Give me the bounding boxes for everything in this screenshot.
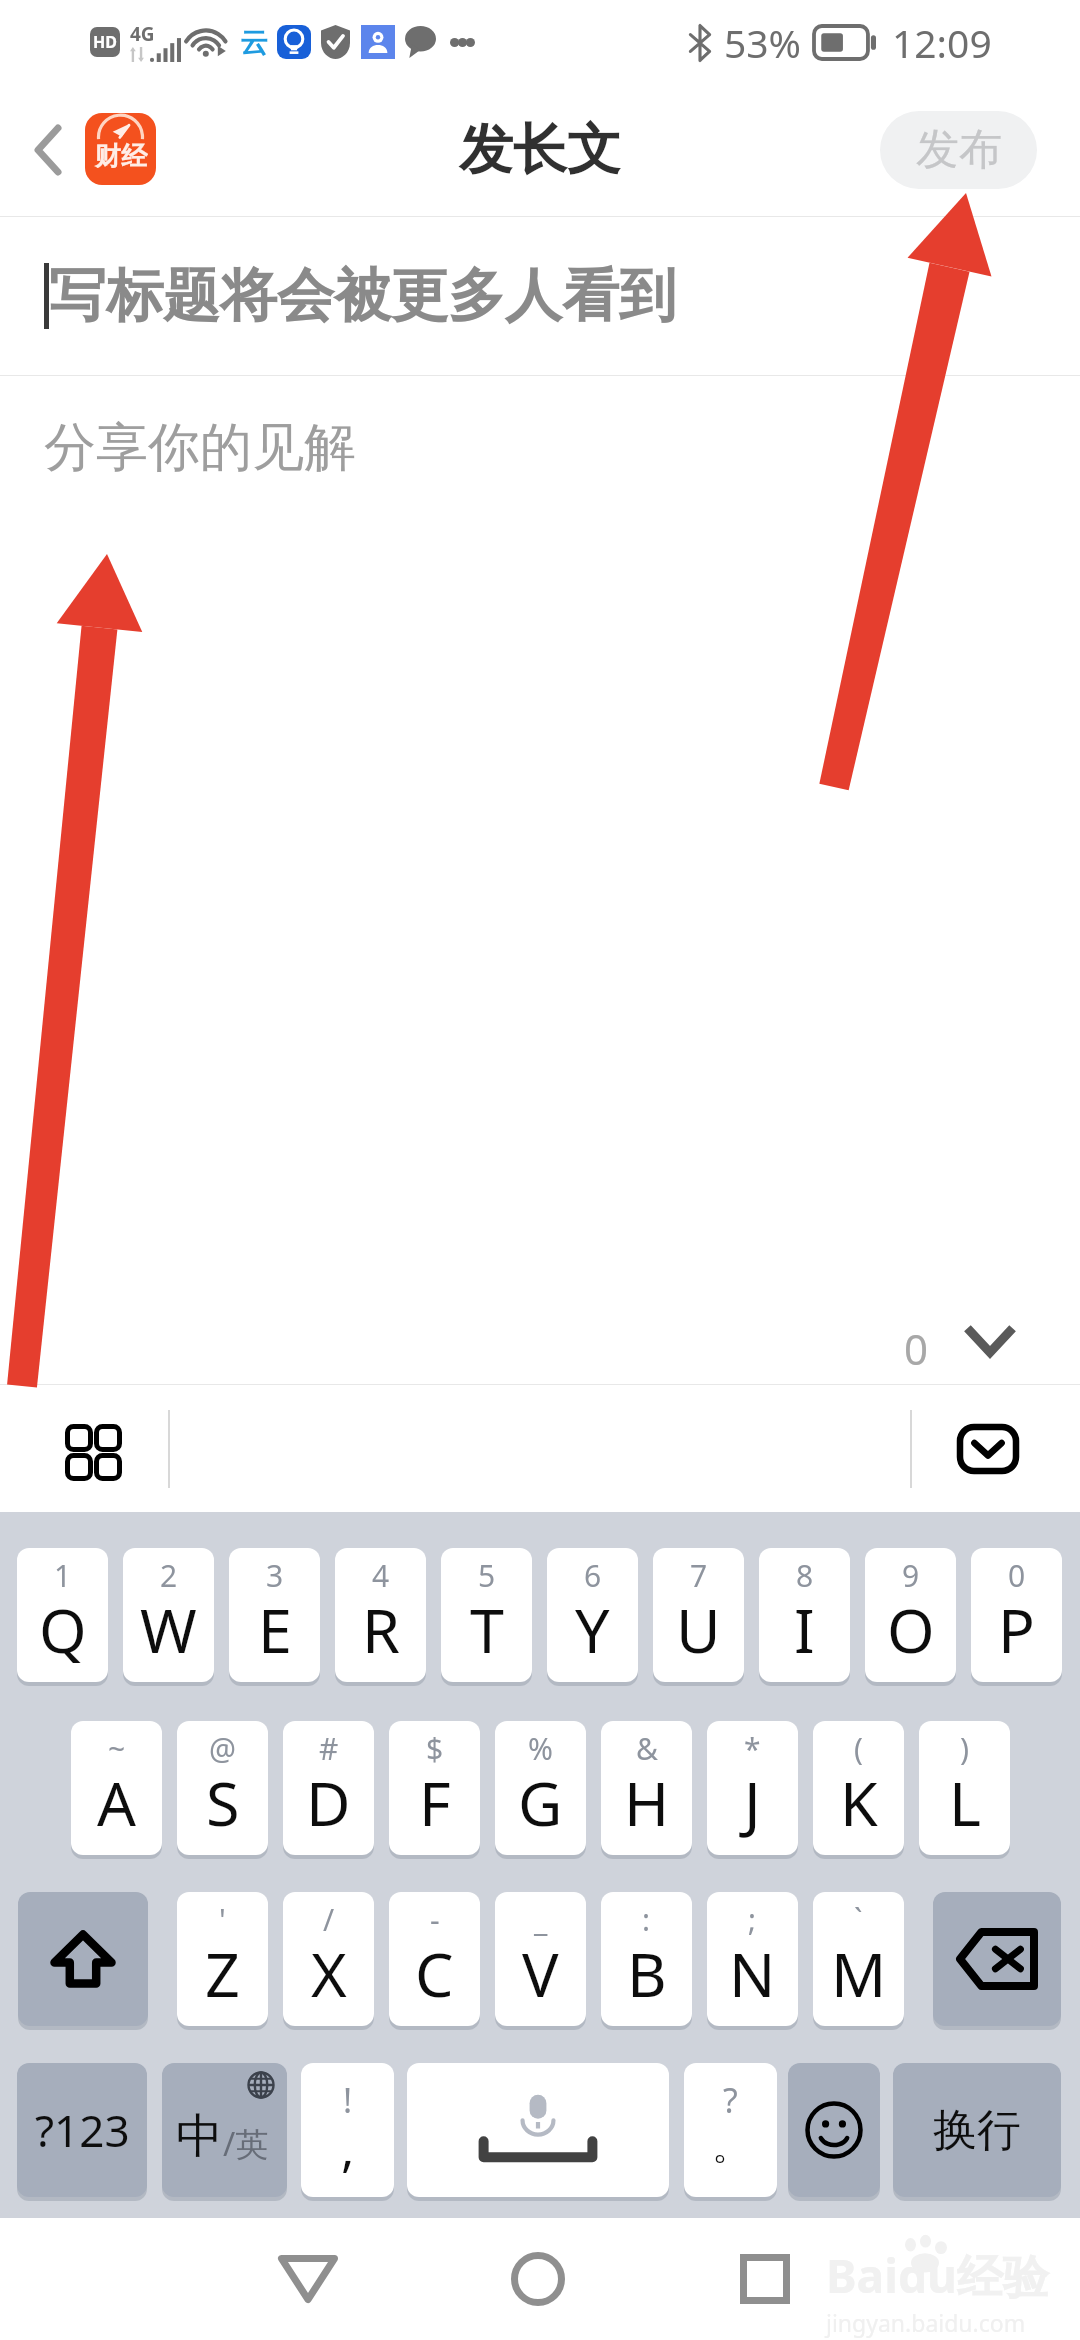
button[interactable]: 发布: [880, 111, 1037, 189]
staticText: M: [831, 1932, 887, 2015]
staticText: (: [854, 1728, 863, 1769]
button[interactable]: ': [177, 1892, 268, 2026]
staticText: ?123: [35, 2100, 130, 2160]
staticText: X: [311, 1932, 347, 2015]
button[interactable]: 5: [441, 1548, 532, 1682]
staticText: ?: [723, 2077, 738, 2123]
button[interactable]: *: [707, 1721, 798, 1855]
button[interactable]: 4: [335, 1548, 426, 1682]
staticText: !: [343, 2077, 353, 2123]
staticText: /: [323, 1899, 335, 1940]
button[interactable]: 6: [547, 1548, 638, 1682]
button[interactable]: ?: [684, 2063, 777, 2197]
staticText: jingyan.baidu.com: [826, 2307, 1026, 2338]
staticText: ~: [108, 1728, 126, 1769]
staticText: C: [415, 1932, 454, 2015]
staticText: 财经: [95, 140, 147, 173]
button[interactable]: Space / voice input: [407, 2063, 669, 2197]
staticText: Y: [575, 1588, 610, 1671]
staticText: G: [518, 1761, 563, 1844]
staticText: :: [642, 1899, 651, 1940]
staticText: #: [319, 1728, 339, 1769]
button[interactable]: Finance app: [85, 113, 156, 185]
staticText: 12:09: [892, 16, 992, 69]
staticText: %: [528, 1728, 553, 1769]
staticText: K: [840, 1761, 878, 1844]
staticText: 5: [478, 1555, 496, 1596]
button[interactable]: ?123: [17, 2063, 147, 2197]
button[interactable]: 7: [653, 1548, 744, 1682]
staticText: 6: [584, 1555, 602, 1596]
button[interactable]: _: [495, 1892, 586, 2026]
staticText: W: [140, 1588, 197, 1671]
staticText: A: [97, 1761, 136, 1844]
staticText: &: [636, 1728, 658, 1769]
staticText: ,: [341, 2114, 355, 2182]
staticText: E: [258, 1588, 292, 1671]
button[interactable]: 2: [123, 1548, 214, 1682]
staticText: 3: [266, 1555, 284, 1596]
staticText: ): [960, 1728, 969, 1769]
button[interactable]: @: [177, 1721, 268, 1855]
staticText: 换行: [933, 2103, 1021, 2158]
staticText: J: [744, 1761, 761, 1844]
staticText: @: [209, 1728, 236, 1769]
staticText: Q: [39, 1588, 87, 1671]
button[interactable]: Back: [8, 110, 88, 190]
staticText: 分享你的见解: [44, 415, 356, 481]
button[interactable]: Home: [488, 2229, 588, 2329]
staticText: V: [522, 1932, 559, 2015]
button[interactable]: Switch Chinese / English: [162, 2063, 287, 2197]
button[interactable]: Shift: [18, 1892, 148, 2026]
button[interactable]: #: [283, 1721, 374, 1855]
button[interactable]: ): [919, 1721, 1010, 1855]
button[interactable]: Panels: [49, 1415, 133, 1483]
button[interactable]: ;: [707, 1892, 798, 2026]
button[interactable]: `: [813, 1892, 904, 2026]
button[interactable]: 3: [229, 1548, 320, 1682]
staticText: $: [426, 1728, 444, 1769]
button[interactable]: $: [389, 1721, 480, 1855]
button[interactable]: :: [601, 1892, 692, 2026]
staticText: 发长文: [459, 116, 621, 184]
staticText: 4: [372, 1555, 390, 1596]
button[interactable]: !: [301, 2063, 394, 2197]
button[interactable]: 9: [865, 1548, 956, 1682]
staticText: Baidu经验: [826, 2244, 1049, 2307]
button[interactable]: Recents: [715, 2229, 815, 2329]
staticText: U: [676, 1588, 721, 1671]
staticText: S: [206, 1761, 240, 1844]
button[interactable]: 0: [971, 1548, 1062, 1682]
button[interactable]: 8: [759, 1548, 850, 1682]
button[interactable]: Emoji: [788, 2063, 880, 2197]
button[interactable]: Hide keyboard: [957, 1424, 1019, 1474]
staticText: ': [219, 1899, 226, 1940]
button[interactable]: /: [283, 1892, 374, 2026]
staticText: /英: [223, 2121, 269, 2166]
button[interactable]: Back: [258, 2229, 358, 2329]
button[interactable]: Backspace: [933, 1892, 1061, 2026]
button[interactable]: -: [389, 1892, 480, 2026]
staticText: R: [362, 1588, 400, 1671]
staticText: H: [624, 1761, 670, 1844]
staticText: I: [794, 1588, 815, 1671]
button[interactable]: %: [495, 1721, 586, 1855]
button[interactable]: (: [813, 1721, 904, 1855]
staticText: F: [419, 1761, 451, 1844]
button[interactable]: 1: [17, 1548, 108, 1682]
staticText: B: [627, 1932, 667, 2015]
staticText: 中: [176, 2107, 223, 2166]
button[interactable]: &: [601, 1721, 692, 1855]
staticText: 9: [902, 1555, 920, 1596]
button[interactable]: 换行: [893, 2063, 1061, 2197]
button[interactable]: ~: [71, 1721, 162, 1855]
staticText: -: [430, 1899, 440, 1940]
staticText: O: [887, 1588, 935, 1671]
staticText: 0: [1008, 1555, 1026, 1596]
staticText: 发布: [916, 123, 1002, 177]
staticText: 1: [54, 1555, 72, 1596]
staticText: ;: [748, 1899, 757, 1940]
staticText: 4G: [130, 21, 155, 47]
staticText: 2: [160, 1555, 178, 1596]
staticText: 7: [690, 1555, 708, 1596]
